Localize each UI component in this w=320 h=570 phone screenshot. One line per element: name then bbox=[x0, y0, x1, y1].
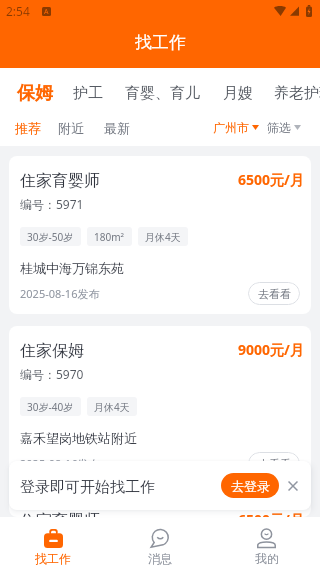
staticText: 找工作 bbox=[135, 32, 186, 53]
staticText: 嘉禾望岗地铁站附近 bbox=[20, 430, 137, 446]
staticText: 2:54 bbox=[6, 3, 30, 19]
button[interactable]: 找工作 bbox=[0, 517, 106, 570]
button[interactable]: 广州市 bbox=[213, 120, 259, 135]
staticText: 住家育婴师 bbox=[20, 511, 100, 517]
staticText: 广州市 bbox=[213, 120, 249, 135]
button[interactable]: 月嫂 bbox=[223, 84, 253, 103]
button[interactable]: 筛选 bbox=[267, 120, 301, 135]
staticText: 消息 bbox=[148, 551, 172, 566]
staticText: 去看看 bbox=[258, 457, 291, 471]
staticText: A bbox=[44, 7, 49, 16]
staticText: 住家保姆 bbox=[20, 341, 84, 361]
staticText: 登录即可开始找工作 bbox=[20, 478, 155, 497]
button[interactable]: 我的 bbox=[213, 517, 320, 570]
staticText: 护工 bbox=[73, 84, 103, 103]
staticText: 2025-08-16发布 bbox=[20, 286, 100, 301]
staticText: 月嫂 bbox=[223, 84, 253, 103]
button[interactable]: 保姆 bbox=[17, 82, 53, 105]
staticText: 我的 bbox=[255, 551, 279, 566]
button[interactable]: 消息 bbox=[106, 517, 213, 570]
staticText: 养老护理 bbox=[274, 84, 320, 103]
button[interactable]: 护工 bbox=[73, 84, 103, 103]
staticText: 月休4天 bbox=[94, 400, 130, 414]
staticText: 桂城中海万锦东苑 bbox=[20, 260, 124, 276]
staticText: 育婴、育儿 bbox=[125, 84, 200, 103]
staticText: 9000元/月 bbox=[238, 340, 304, 359]
staticText: 找工作 bbox=[35, 551, 71, 566]
staticText: 筛选 bbox=[267, 120, 291, 135]
button[interactable]: 关闭 bbox=[286, 479, 300, 493]
staticText: 2025-08-16发布 bbox=[20, 456, 100, 471]
staticText: 6500元/月 bbox=[238, 170, 304, 189]
staticText: 住家育婴师 bbox=[20, 171, 100, 191]
staticText: 编号：5970 bbox=[20, 366, 84, 382]
staticText: 编号：5971 bbox=[20, 196, 84, 212]
button[interactable]: 住家保姆 bbox=[9, 326, 311, 484]
staticText: 附近 bbox=[58, 120, 84, 136]
button[interactable]: 去看看 bbox=[248, 452, 300, 475]
button[interactable]: 去看看 bbox=[248, 282, 300, 305]
button[interactable]: 住家育婴师 bbox=[9, 496, 311, 517]
button[interactable]: 最新 bbox=[104, 120, 130, 136]
button[interactable]: 去登录 bbox=[221, 473, 279, 498]
staticText: 月休4天 bbox=[145, 230, 181, 244]
button[interactable]: 推荐 bbox=[15, 120, 41, 136]
staticText: 180m² bbox=[94, 230, 125, 244]
staticText: 6500元/月 bbox=[238, 510, 304, 517]
staticText: 30岁-50岁 bbox=[27, 230, 74, 244]
staticText: 30岁-40岁 bbox=[27, 400, 74, 414]
staticText: 保姆 bbox=[17, 82, 53, 105]
button[interactable]: 育婴、育儿 bbox=[125, 84, 200, 103]
staticText: 去登录 bbox=[231, 478, 270, 494]
button[interactable]: 养老护理 bbox=[274, 84, 320, 103]
button[interactable]: 住家育婴师 bbox=[9, 156, 311, 314]
staticText: 最新 bbox=[104, 120, 130, 136]
button[interactable]: 附近 bbox=[58, 120, 84, 136]
staticText: 去看看 bbox=[258, 287, 291, 301]
staticText: 推荐 bbox=[15, 120, 41, 136]
